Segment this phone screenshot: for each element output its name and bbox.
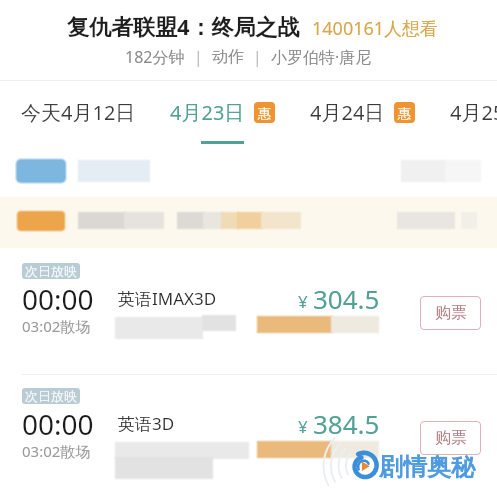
staticText: 次日放映 [25, 263, 77, 279]
button[interactable]: 次日放映 [0, 250, 497, 373]
staticText: 惠 [258, 105, 271, 121]
button[interactable]: 今天4月12日 [21, 85, 136, 112]
other: 剧情奥秘 watermark [0, 0, 497, 493]
staticText: 4月24日 [310, 99, 385, 126]
staticText: 1400161人想看 [312, 16, 439, 41]
button[interactable]: 4月23日 [170, 85, 275, 112]
staticText: 购票 [435, 303, 467, 323]
staticText: 英语IMAX3D [118, 287, 217, 310]
staticText: 304.5 [313, 281, 380, 316]
staticText: 今天4月12日 [21, 99, 136, 126]
button[interactable] [0, 197, 497, 248]
staticText: 03:02散场 [22, 316, 91, 336]
staticText: 英语3D [118, 412, 175, 435]
button[interactable]: 4月24日 [310, 85, 415, 112]
staticText: 4月25日 [450, 99, 497, 126]
staticText: 00:00 [22, 405, 94, 443]
staticText: | [194, 46, 203, 68]
staticText: | [253, 46, 262, 68]
staticText: 惠 [398, 105, 411, 121]
staticText: 购票 [435, 428, 467, 448]
staticText: 剧情奥秘 [379, 452, 475, 482]
staticText: ¥ [298, 415, 308, 438]
staticText: 次日放映 [25, 388, 77, 404]
button[interactable]: 购票 [420, 296, 481, 330]
staticText: 动作 [212, 47, 244, 67]
staticText: 384.5 [313, 406, 380, 441]
staticText: 00:00 [22, 280, 94, 318]
button[interactable]: 次日放映 [0, 375, 497, 493]
button[interactable]: 4月25日 [450, 85, 497, 112]
button[interactable] [0, 146, 497, 197]
staticText: 4月23日 [170, 99, 245, 126]
staticText: 182分钟 [125, 46, 185, 68]
staticText: ¥ [298, 290, 308, 313]
staticText: 03:02散场 [22, 441, 91, 461]
staticText: 小罗伯特·唐尼 [271, 46, 372, 68]
button[interactable]: 购票 [420, 421, 481, 455]
staticText: 复仇者联盟4：终局之战 [67, 11, 300, 41]
